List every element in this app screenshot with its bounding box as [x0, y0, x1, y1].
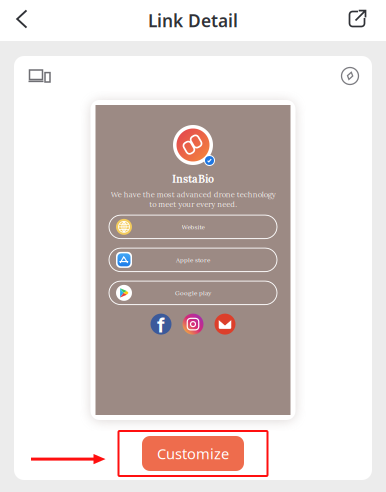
staticText: We have the most advanced drone technolo… [110, 190, 275, 209]
button[interactable]: Google play [109, 281, 277, 305]
button[interactable]: Back [2, 0, 42, 41]
button[interactable]: Share [337, 0, 377, 41]
button[interactable]: Preview devices [28, 65, 52, 87]
staticText: InstaBio [172, 172, 214, 186]
staticText: Apple store [176, 256, 210, 264]
button[interactable]: Website [109, 215, 277, 239]
staticText: Link Detail [148, 9, 238, 32]
button[interactable]: Apple store [109, 248, 277, 272]
button[interactable]: Email [214, 314, 235, 335]
button[interactable]: Instagram [182, 314, 203, 335]
staticText: f [157, 313, 165, 337]
staticText: Customize [157, 444, 229, 463]
staticText: Website [181, 223, 204, 231]
staticText: Google play [175, 289, 211, 297]
button[interactable]: Open in browser [339, 65, 361, 87]
button[interactable]: Facebook [150, 314, 171, 335]
button[interactable]: Customize [142, 436, 244, 471]
